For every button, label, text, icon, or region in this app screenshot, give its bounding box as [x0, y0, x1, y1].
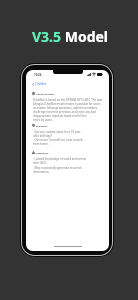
staticText: About IChatBot	[36, 92, 55, 95]
button[interactable]: Back to ChatBot	[32, 81, 47, 87]
staticText: V3.5 Model	[32, 27, 109, 46]
staticText: Limited knowledge of world and events af…	[33, 157, 87, 165]
staticText: 10:26	[34, 73, 42, 77]
staticText: IChatBot is based on the OPENAI GPT-3 AP…	[33, 98, 103, 122]
staticText: Got any creative ideas for a 10 year old…	[33, 130, 81, 138]
staticText: May occasionally generate incorrect info…	[33, 166, 82, 174]
staticText: ChatBot	[35, 82, 47, 86]
staticText: Limitation	[36, 151, 49, 154]
staticText: Example?	[36, 124, 48, 127]
staticText: Overcome CoronaVirus, how to work from h…	[33, 138, 83, 146]
